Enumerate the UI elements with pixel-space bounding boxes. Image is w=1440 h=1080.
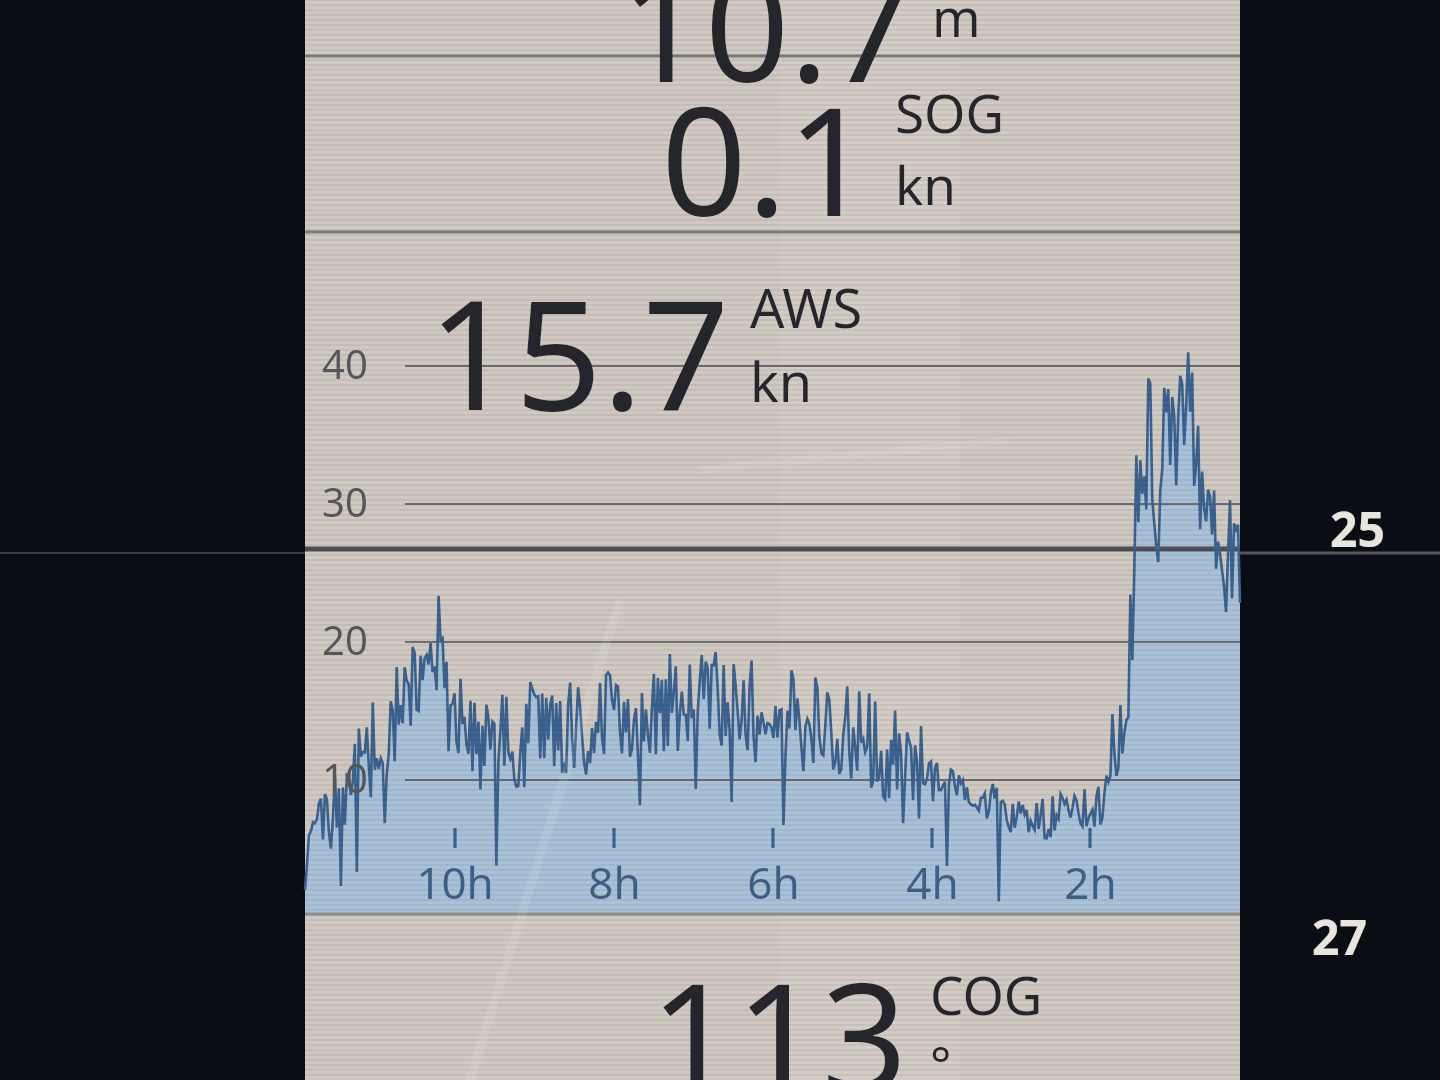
staticText: 10 — [322, 750, 368, 804]
button[interactable]: 113 — [305, 914, 1240, 1080]
staticText: kn — [895, 148, 957, 220]
staticText: 10.7 — [620, 0, 914, 126]
staticText: COG — [930, 958, 1043, 1030]
staticText: 27 — [1312, 904, 1367, 969]
staticText: 0.1 — [661, 56, 873, 232]
staticText: AWS — [750, 270, 863, 344]
staticText: 2h — [1064, 852, 1117, 904]
staticText: 10h — [416, 852, 494, 904]
staticText: SOG — [895, 76, 1005, 148]
staticText: 6h — [747, 852, 800, 904]
staticText: 4h — [906, 852, 959, 904]
staticText: ° — [930, 1030, 952, 1080]
staticText: 20 — [322, 612, 368, 666]
button[interactable]: Depth alarm 25 — [1330, 496, 1385, 561]
button[interactable]: Depth alarm 27 — [1312, 904, 1367, 969]
staticText: 40 — [322, 336, 368, 390]
staticText: kn — [750, 344, 813, 418]
staticText: 30 — [322, 474, 368, 528]
staticText: 8h — [588, 852, 641, 904]
staticText: 25 — [1330, 496, 1385, 561]
staticText: 15.7 — [428, 248, 730, 455]
button[interactable]: 10.7 — [620, 0, 981, 126]
staticText: 113 — [650, 932, 908, 1080]
button[interactable]: 15.7 — [428, 248, 863, 455]
button[interactable]: 0.1 — [305, 56, 1240, 232]
staticText: m — [932, 0, 981, 52]
